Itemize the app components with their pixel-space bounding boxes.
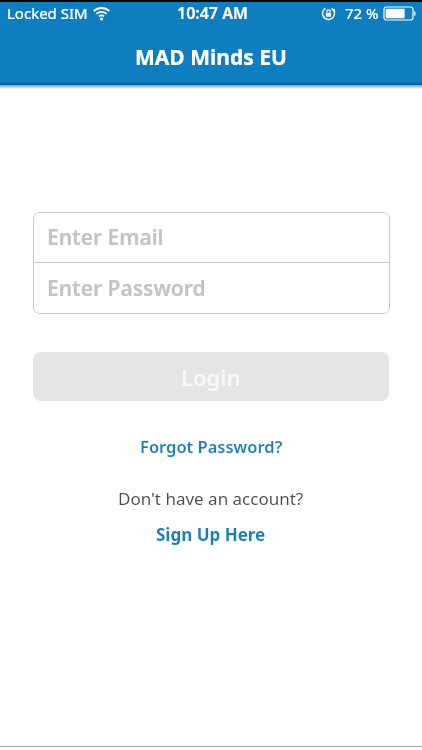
staticText: Locked SIM (7, 3, 88, 23)
button[interactable]: Sign Up Here (156, 523, 266, 546)
staticText: Don't have an account? (118, 487, 304, 510)
button[interactable]: Enter Email (33, 212, 390, 262)
staticText: 10:47 AM (177, 2, 248, 24)
button[interactable]: Forgot Password? (140, 435, 283, 457)
button[interactable]: Enter Password (33, 263, 390, 314)
staticText: Enter Email (47, 223, 164, 252)
button[interactable]: Login (33, 352, 389, 401)
staticText: Enter Password (47, 274, 206, 303)
staticText: Login (181, 362, 241, 392)
staticText: MAD Minds EU (135, 43, 287, 72)
staticText: 72 % (345, 3, 379, 23)
